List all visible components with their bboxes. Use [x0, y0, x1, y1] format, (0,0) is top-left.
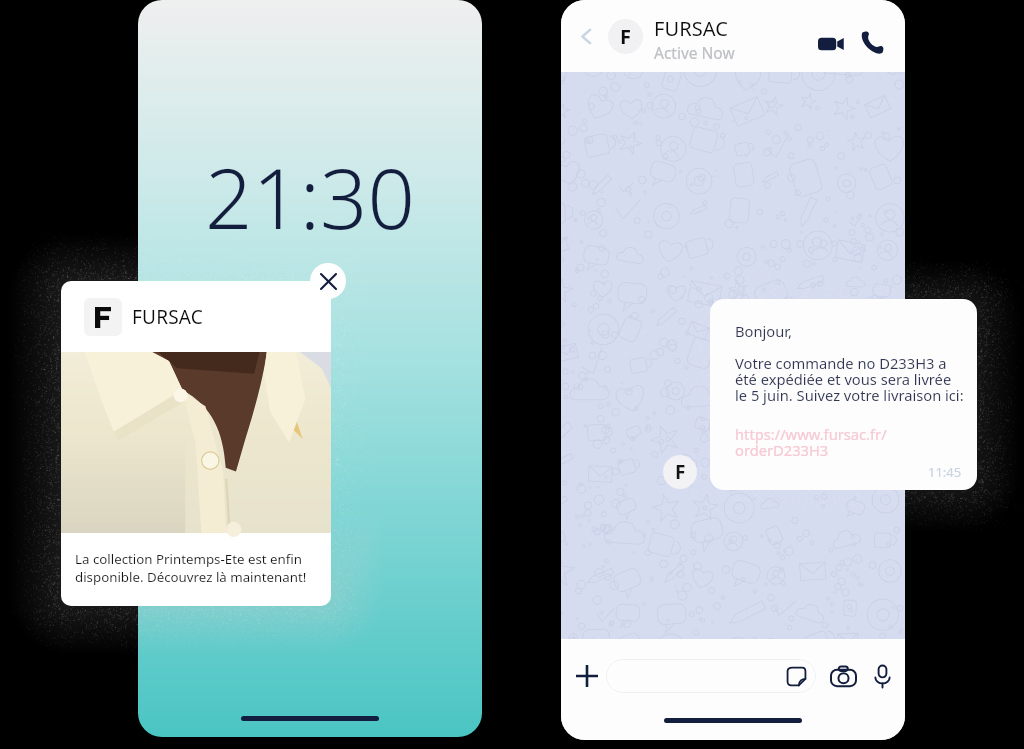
- staticText: F: [620, 23, 631, 50]
- button[interactable]: Close notification: [310, 263, 346, 299]
- button[interactable]: Voice call: [855, 24, 891, 60]
- staticText: FURSAC: [654, 15, 729, 42]
- staticText: F: [675, 459, 686, 485]
- staticText: FURSAC: [132, 304, 203, 330]
- button[interactable]: Voice message: [867, 661, 897, 691]
- button[interactable]: Bonjour, Votre commande no D233H3 a été …: [710, 299, 977, 490]
- staticText: https://www.fursac.fr/ orderD233H3: [735, 424, 887, 460]
- button[interactable]: Video call: [813, 26, 849, 62]
- button[interactable]: FURSAC: [61, 281, 331, 606]
- button[interactable]: Camera: [828, 661, 858, 691]
- button[interactable]: Add attachment: [572, 661, 602, 691]
- staticText: Bonjour, Votre commande no D233H3 a été …: [735, 321, 964, 405]
- button[interactable]: [606, 659, 816, 693]
- staticText: 21:30: [205, 140, 415, 253]
- staticText: La collection Printemps-Ete est enfin di…: [75, 550, 307, 586]
- staticText: 11:45: [928, 463, 962, 481]
- button[interactable]: Back: [573, 23, 599, 49]
- staticText: Active Now: [654, 42, 735, 63]
